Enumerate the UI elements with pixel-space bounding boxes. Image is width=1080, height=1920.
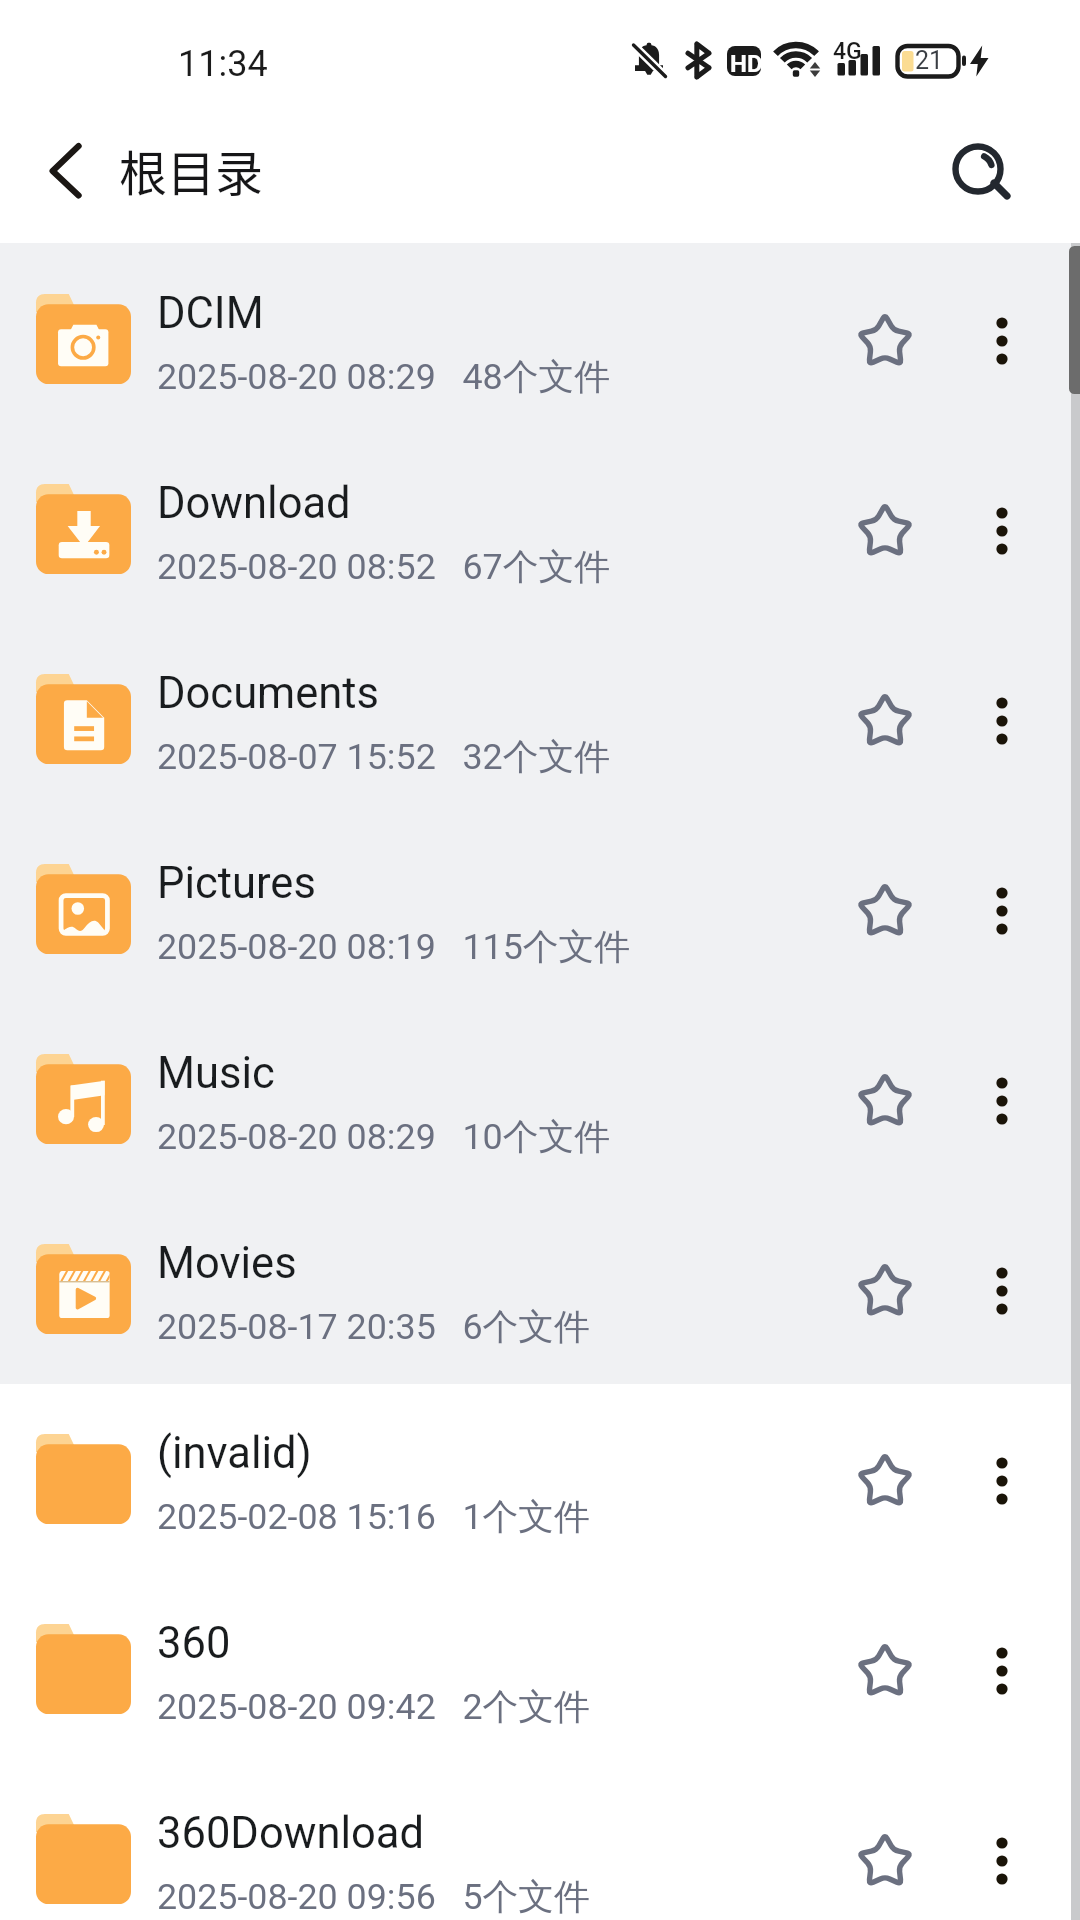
button[interactable]: Favorite — [837, 1242, 933, 1338]
staticText: 2025-08-20 08:29 48个文件 — [157, 355, 611, 400]
staticText: Pictures — [157, 858, 316, 909]
button[interactable]: Back — [18, 130, 114, 226]
staticText: 2025-08-07 15:52 32个文件 — [157, 735, 611, 780]
button[interactable]: Favorite — [837, 1812, 933, 1908]
button[interactable]: Search — [930, 121, 1026, 217]
button[interactable]: Favorite — [837, 482, 933, 578]
button[interactable]: More options — [957, 1246, 1047, 1336]
button[interactable]: More options — [957, 1436, 1047, 1526]
staticText: 根目录 — [119, 135, 264, 205]
button[interactable]: 360Download — [0, 1763, 1080, 1920]
button[interactable]: Movies — [0, 1193, 1080, 1383]
staticText: 2025-08-20 08:52 67个文件 — [157, 545, 611, 590]
button[interactable]: Documents — [0, 623, 1080, 813]
staticText: 11:34 — [178, 43, 268, 85]
button[interactable]: Music — [0, 1003, 1080, 1193]
button[interactable]: More options — [957, 866, 1047, 956]
staticText: Music — [157, 1048, 275, 1099]
staticText: 4G — [833, 38, 862, 65]
button[interactable]: More options — [957, 676, 1047, 766]
staticText: 2025-08-20 08:19 115个文件 — [157, 925, 631, 970]
button[interactable]: More options — [957, 486, 1047, 576]
button[interactable]: More options — [957, 1816, 1047, 1906]
button[interactable]: Favorite — [837, 1622, 933, 1718]
button[interactable]: (invalid) — [0, 1383, 1080, 1573]
button[interactable]: Favorite — [837, 1052, 933, 1148]
button[interactable]: DCIM — [0, 243, 1080, 433]
staticText: (invalid) — [157, 1428, 312, 1479]
staticText: 2025-08-20 09:42 2个文件 — [157, 1685, 590, 1730]
button[interactable]: 360 — [0, 1573, 1080, 1763]
button[interactable]: More options — [957, 1056, 1047, 1146]
button[interactable]: Favorite — [837, 672, 933, 768]
staticText: Movies — [157, 1238, 297, 1289]
staticText: 2025-08-20 08:29 10个文件 — [157, 1115, 611, 1160]
button[interactable]: Favorite — [837, 1432, 933, 1528]
staticText: 360Download — [157, 1808, 424, 1859]
button[interactable]: Download — [0, 433, 1080, 623]
staticText: Download — [157, 478, 351, 529]
staticText: 21 — [915, 46, 944, 75]
staticText: 2025-08-20 09:56 5个文件 — [157, 1875, 590, 1920]
staticText: Documents — [157, 668, 380, 719]
button[interactable]: Pictures — [0, 813, 1080, 1003]
staticText: 2025-02-08 15:16 1个文件 — [157, 1495, 590, 1540]
staticText: 2025-08-17 20:35 6个文件 — [157, 1305, 590, 1350]
staticText: DCIM — [157, 288, 264, 339]
button[interactable]: More options — [957, 296, 1047, 386]
button[interactable]: Favorite — [837, 292, 933, 388]
button[interactable]: Favorite — [837, 862, 933, 958]
staticText: 360 — [157, 1618, 231, 1669]
button[interactable]: More options — [957, 1626, 1047, 1716]
staticText: HD — [730, 50, 763, 78]
